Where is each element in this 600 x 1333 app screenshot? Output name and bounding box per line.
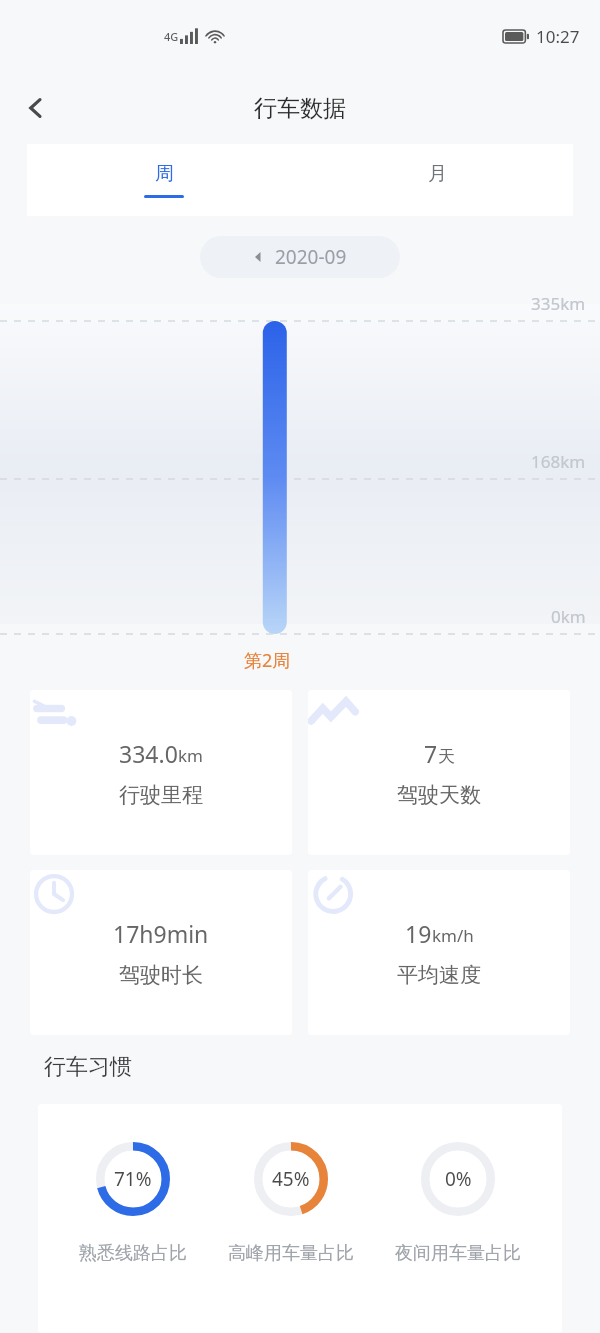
staticText: 行驶里程 xyxy=(119,782,203,808)
staticText: 0km xyxy=(551,605,586,628)
staticText: km/h xyxy=(432,924,474,947)
button[interactable]: 17h9min xyxy=(30,870,292,1035)
button[interactable]: 19 xyxy=(308,870,570,1035)
staticText: 周 xyxy=(155,162,174,186)
staticText: 19 xyxy=(405,918,432,949)
staticText: km xyxy=(178,744,203,767)
staticText: 71% xyxy=(114,1166,152,1192)
staticText: 7 xyxy=(424,738,438,769)
button[interactable]: 周 xyxy=(27,144,300,216)
staticText: 335km xyxy=(531,292,586,315)
staticText: 熟悉线路占比 xyxy=(79,1242,187,1265)
staticText: 334.0 xyxy=(119,738,178,769)
staticText: 夜间用车量占比 xyxy=(395,1242,521,1265)
staticText: 4G xyxy=(164,29,179,44)
staticText: 月 xyxy=(428,162,447,186)
button[interactable]: 334.0 xyxy=(30,690,292,855)
staticText: 天 xyxy=(438,746,455,767)
button[interactable]: 7 xyxy=(308,690,570,855)
staticText: 10:27 xyxy=(536,25,580,48)
staticText: 行车数据 xyxy=(254,94,346,123)
button[interactable]: Back xyxy=(10,82,62,134)
staticText: 高峰用车量占比 xyxy=(228,1242,354,1265)
staticText: 驾驶时长 xyxy=(119,962,203,988)
staticText: 驾驶天数 xyxy=(397,782,481,808)
staticText: 行车习惯 xyxy=(44,1053,132,1081)
button[interactable]: 月 xyxy=(300,144,573,216)
staticText: 0% xyxy=(445,1166,472,1192)
button[interactable]: 2020-09 xyxy=(200,236,400,278)
staticText: 2020-09 xyxy=(275,244,347,270)
staticText: 45% xyxy=(272,1166,310,1192)
staticText: 17h9min xyxy=(113,918,209,949)
staticText: 168km xyxy=(531,450,586,473)
staticText: 第2周 xyxy=(244,648,291,673)
staticText: 平均速度 xyxy=(397,962,481,988)
